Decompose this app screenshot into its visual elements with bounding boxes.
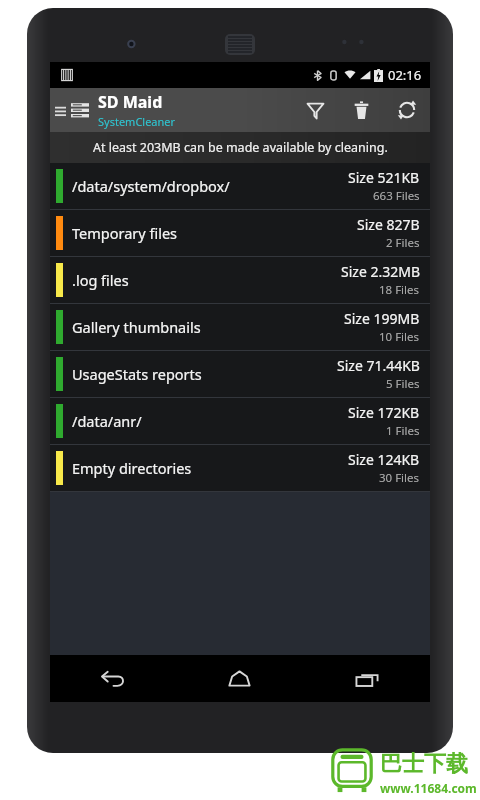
button[interactable]: Back — [50, 655, 176, 702]
staticText: Empty directories — [72, 458, 192, 478]
staticText: Temporary files — [72, 223, 178, 243]
button[interactable]: UsageStats reports — [50, 351, 430, 398]
button[interactable]: Home — [176, 655, 303, 702]
staticText: .log files — [72, 270, 129, 290]
staticText: 663 Files — [373, 188, 420, 204]
staticText: Size 199MB — [344, 309, 420, 328]
staticText: /data/system/dropbox/ — [72, 176, 230, 196]
button[interactable]: Open navigation drawer — [50, 88, 70, 132]
staticText: 02:16 — [388, 66, 422, 84]
staticText: Size 71.44KB — [337, 356, 420, 375]
staticText: UsageStats reports — [72, 364, 202, 384]
button[interactable]: Delete — [338, 88, 384, 132]
staticText: SD Maid — [98, 91, 163, 113]
staticText: SystemCleaner — [98, 114, 176, 129]
button[interactable]: Gallery thumbnails — [50, 304, 430, 351]
staticText: 5 Files — [386, 376, 420, 392]
staticText: 10 Files — [379, 329, 420, 345]
staticText: 巴士下载 — [380, 750, 468, 778]
button[interactable]: Recent apps — [303, 655, 430, 702]
staticText: /data/anr/ — [72, 411, 142, 431]
staticText: Size 521KB — [348, 168, 420, 187]
button[interactable]: /data/system/dropbox/ — [50, 163, 430, 210]
staticText: 18 Files — [379, 282, 420, 298]
button[interactable]: .log files — [50, 257, 430, 304]
button[interactable]: Empty directories — [50, 445, 430, 492]
staticText: At least 203MB can be made available by … — [93, 139, 388, 156]
staticText: Gallery thumbnails — [72, 317, 201, 337]
staticText: Size 2.32MB — [341, 262, 420, 281]
staticText: www.11684.com — [380, 780, 477, 796]
button[interactable]: Temporary files — [50, 210, 430, 257]
staticText: 1 Files — [386, 423, 420, 439]
staticText: Size 124KB — [348, 450, 420, 469]
button[interactable]: Filter — [292, 88, 338, 132]
staticText: 2 Files — [386, 235, 420, 251]
staticText: Size 827B — [357, 215, 420, 234]
button[interactable]: SD Maid — [98, 88, 292, 132]
staticText: 30 Files — [379, 470, 420, 486]
staticText: Size 172KB — [348, 403, 420, 422]
button[interactable]: /data/anr/ — [50, 398, 430, 445]
button[interactable]: Refresh — [384, 88, 430, 132]
